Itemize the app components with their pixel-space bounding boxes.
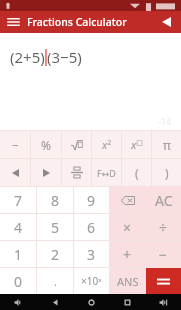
button[interactable]: − xyxy=(0,131,30,158)
button[interactable]: × xyxy=(110,214,145,240)
button[interactable]: 0 xyxy=(0,268,36,294)
staticText: 0 xyxy=(14,272,23,291)
staticText: 2 xyxy=(51,245,60,264)
staticText: Fractions Calculator xyxy=(27,15,152,29)
staticText: 1 xyxy=(14,245,23,264)
button[interactable]: 7 xyxy=(0,187,36,213)
button[interactable]: ( xyxy=(122,159,151,186)
button[interactable]: ÷ xyxy=(146,214,181,240)
button[interactable]: − xyxy=(146,241,181,267)
staticText: 8 xyxy=(51,191,60,210)
staticText: . xyxy=(54,274,57,289)
staticText: x□ xyxy=(131,137,143,152)
button[interactable]: Backspace xyxy=(110,187,145,213)
staticText: ÷ xyxy=(159,218,168,237)
button[interactable]: % xyxy=(31,131,61,158)
button[interactable]: 3 xyxy=(74,241,109,267)
button[interactable]: 8 xyxy=(37,187,73,213)
button[interactable]: + xyxy=(110,241,145,267)
button[interactable]: Fraction xyxy=(62,159,91,186)
button[interactable]: ANS xyxy=(110,268,145,294)
staticText: (2+5) xyxy=(10,47,45,67)
button[interactable]: Home xyxy=(73,294,109,310)
button[interactable]: Volume down xyxy=(0,294,37,310)
button[interactable]: Menu xyxy=(0,11,27,33)
staticText: ×10x xyxy=(81,274,102,288)
button[interactable]: 9 xyxy=(74,187,109,213)
staticText: ANS xyxy=(117,274,139,289)
button[interactable]: Move cursor right xyxy=(31,159,61,186)
staticText: ( xyxy=(135,165,139,181)
staticText: 5 xyxy=(51,218,60,237)
button[interactable]: Back xyxy=(37,294,73,310)
button[interactable]: Back xyxy=(152,11,181,33)
button[interactable]: π xyxy=(152,131,181,158)
button[interactable]: Move cursor left xyxy=(0,159,30,186)
button[interactable]: 1 xyxy=(0,241,36,267)
button[interactable]: 5 xyxy=(37,214,73,240)
staticText: (3−5) xyxy=(47,47,82,67)
button[interactable]: ×10x xyxy=(74,268,109,294)
button[interactable]: F↔D xyxy=(92,159,121,186)
staticText: F↔D xyxy=(97,167,116,179)
button[interactable]: 2 xyxy=(37,241,73,267)
staticText: 6 xyxy=(87,218,96,237)
staticText: × xyxy=(123,218,132,237)
staticText: 9 xyxy=(87,191,96,210)
button[interactable]: ) xyxy=(152,159,181,186)
button[interactable]: x□ xyxy=(122,131,151,158)
button[interactable]: Equals xyxy=(146,268,181,294)
staticText: + xyxy=(123,245,132,264)
button[interactable]: 4 xyxy=(0,214,36,240)
staticText: x2 xyxy=(102,137,112,152)
staticText: ) xyxy=(165,165,169,181)
button[interactable]: . xyxy=(37,268,73,294)
button[interactable]: AC xyxy=(146,187,181,213)
staticText: AC xyxy=(155,191,173,210)
button[interactable]: Volume up xyxy=(145,294,181,310)
staticText: − xyxy=(12,137,19,153)
staticText: 3 xyxy=(87,245,96,264)
staticText: % xyxy=(41,137,51,153)
button[interactable]: 6 xyxy=(74,214,109,240)
staticText: π xyxy=(163,137,171,153)
staticText: 4 xyxy=(14,218,23,237)
button[interactable]: Recent apps xyxy=(109,294,145,310)
staticText: − xyxy=(159,245,168,264)
button[interactable]: x2 xyxy=(92,131,121,158)
button[interactable]: Square root xyxy=(62,131,91,158)
staticText: 7 xyxy=(14,191,23,210)
staticText: -14 xyxy=(158,115,172,127)
